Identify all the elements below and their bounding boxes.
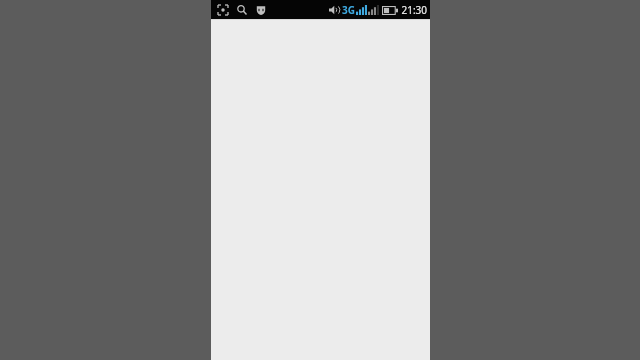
button[interactable]: Search <box>234 2 250 18</box>
button[interactable]: Security <box>253 2 269 18</box>
staticText: 3G <box>342 3 355 17</box>
button[interactable]: Scan <box>215 2 231 18</box>
staticText: 21:30 <box>401 3 427 17</box>
